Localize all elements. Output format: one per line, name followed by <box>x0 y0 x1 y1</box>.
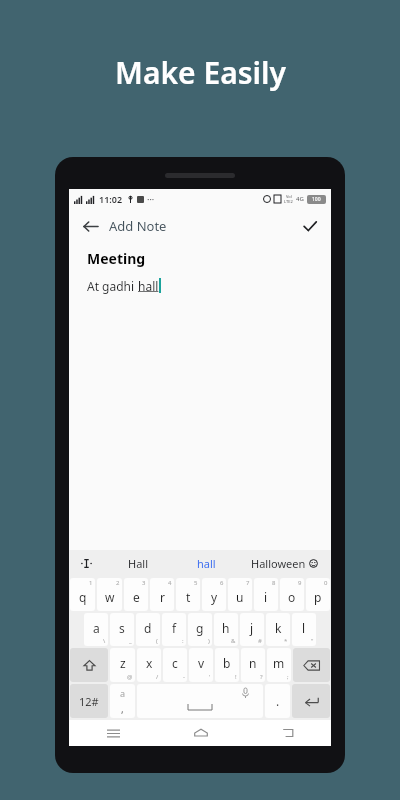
staticText: ? <box>260 673 263 681</box>
staticText: 8 <box>272 579 276 587</box>
button[interactable]: 5 <box>176 578 200 611</box>
staticText: ; <box>287 673 289 681</box>
button[interactable]: 6 <box>202 578 226 611</box>
staticText: 12# <box>79 694 99 709</box>
staticText: 4G <box>296 195 304 203</box>
button[interactable]: h <box>214 613 238 646</box>
staticText: * <box>284 637 288 645</box>
button[interactable]: c <box>163 648 187 682</box>
staticText: 1 <box>89 579 93 587</box>
button[interactable]: Shift <box>70 648 108 682</box>
staticText: / <box>156 673 159 681</box>
button[interactable]: v <box>189 648 213 682</box>
staticText: i <box>264 589 268 605</box>
staticText: t <box>186 589 191 605</box>
button[interactable]: 7 <box>228 578 252 611</box>
staticText: # <box>258 637 262 645</box>
button[interactable]: Enter <box>292 684 330 718</box>
button[interactable]: Home <box>157 720 244 746</box>
staticText: c <box>172 655 178 671</box>
staticText: 3 <box>142 579 146 587</box>
staticText: b <box>223 655 231 671</box>
staticText: d <box>144 620 152 636</box>
staticText: hall <box>197 556 216 571</box>
button[interactable]: 3 <box>124 578 148 611</box>
staticText: 7 <box>246 579 250 587</box>
button[interactable]: Back <box>77 213 103 239</box>
staticText: " <box>311 637 314 645</box>
button[interactable]: 2 <box>97 578 122 611</box>
button[interactable]: 9 <box>280 578 304 611</box>
staticText: 9 <box>298 579 302 587</box>
staticText: ) <box>208 637 210 645</box>
button[interactable]: Back <box>244 720 331 746</box>
button[interactable]: b <box>215 648 239 682</box>
staticText: 5 <box>194 579 198 587</box>
staticText: l <box>302 620 306 636</box>
staticText: k <box>275 620 282 636</box>
button[interactable]: Save note <box>297 213 323 239</box>
button[interactable]: d <box>136 613 160 646</box>
button[interactable]: Recents <box>69 720 157 746</box>
staticText: o <box>288 589 296 605</box>
staticText: Add Note <box>109 217 167 235</box>
button[interactable]: a <box>84 613 108 646</box>
staticText: ! <box>235 673 237 681</box>
staticText: s <box>119 620 125 636</box>
staticText: a <box>93 620 100 636</box>
button[interactable]: Text cursor tools <box>69 550 103 576</box>
staticText: Vo) <box>286 194 292 199</box>
button[interactable]: f <box>162 613 186 646</box>
staticText: 2 <box>116 579 120 587</box>
staticText: y <box>211 589 218 605</box>
staticText: j <box>250 620 254 636</box>
staticText: 100 <box>312 196 321 203</box>
button[interactable]: g <box>188 613 212 646</box>
staticText: _ <box>129 637 132 645</box>
staticText: Make Easily <box>115 52 286 93</box>
staticText: g <box>196 620 204 636</box>
button[interactable]: . <box>265 684 290 718</box>
staticText: 4 <box>168 579 172 587</box>
button[interactable]: Halloween <box>241 550 327 576</box>
staticText: ··· <box>147 193 155 205</box>
button[interactable]: 1 <box>70 578 95 611</box>
staticText: ' <box>209 673 211 681</box>
staticText: m <box>273 655 285 671</box>
button[interactable]: 8 <box>254 578 278 611</box>
button[interactable]: Hall <box>103 550 172 576</box>
staticText: Meeting <box>87 249 146 268</box>
staticText: At gadhi <box>87 278 138 294</box>
staticText: LTE2 <box>284 199 293 204</box>
staticText: : <box>182 637 184 645</box>
staticText: ( <box>156 637 158 645</box>
button[interactable]: n <box>241 648 265 682</box>
staticText: - <box>183 673 185 681</box>
button[interactable]: k <box>266 613 290 646</box>
staticText: a <box>120 687 126 699</box>
staticText: 11:02 <box>99 193 123 205</box>
staticText: Hall <box>128 556 148 571</box>
button[interactable]: 12# <box>70 684 108 718</box>
staticText: r <box>160 589 165 605</box>
button[interactable]: Language <box>110 684 135 718</box>
staticText: p <box>314 589 322 605</box>
button[interactable]: j <box>240 613 264 646</box>
button[interactable]: 0 <box>306 578 330 611</box>
staticText: f <box>172 620 177 636</box>
staticText: w <box>105 589 115 605</box>
staticText: u <box>236 589 244 605</box>
button[interactable]: z <box>110 648 135 682</box>
button[interactable]: hall <box>172 550 241 576</box>
staticText: h <box>222 620 230 636</box>
button[interactable]: x <box>137 648 161 682</box>
button[interactable]: Backspace <box>293 648 330 682</box>
button[interactable]: s <box>110 613 134 646</box>
button[interactable]: m <box>267 648 291 682</box>
button[interactable]: Space <box>137 684 263 718</box>
button[interactable]: l <box>292 613 316 646</box>
staticText: \ <box>103 637 106 645</box>
button[interactable]: 4 <box>150 578 174 611</box>
staticText: e <box>133 589 140 605</box>
staticText: @ <box>127 673 133 681</box>
